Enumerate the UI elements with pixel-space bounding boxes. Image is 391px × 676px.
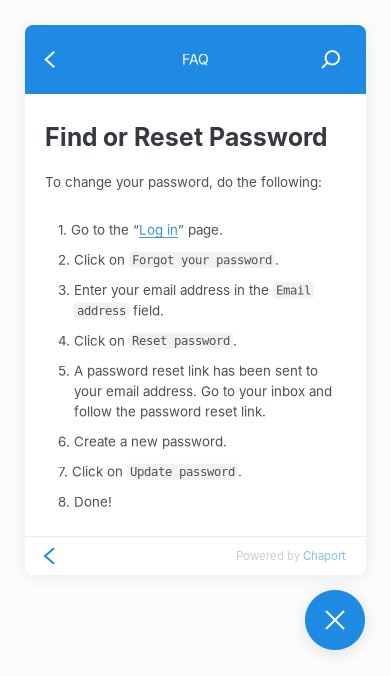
- staticText: Done!: [74, 494, 112, 510]
- staticText: 2.: [58, 252, 70, 268]
- staticText: 8.: [58, 494, 70, 510]
- staticText: Log in: [139, 222, 178, 238]
- staticText: 4.: [58, 333, 70, 349]
- button[interactable]: Close chat: [305, 590, 365, 650]
- staticText: 3.: [58, 282, 70, 298]
- staticText: field.: [129, 303, 164, 319]
- button[interactable]: Back: [29, 37, 71, 81]
- staticText: Email: [276, 283, 311, 297]
- staticText: address: [77, 303, 126, 318]
- button[interactable]: Search: [320, 37, 362, 81]
- staticText: Click on: [74, 252, 129, 268]
- staticText: Go to the “: [71, 222, 139, 238]
- staticText: 6.: [58, 434, 70, 450]
- staticText: ” page.: [178, 222, 223, 238]
- staticText: .: [238, 464, 242, 480]
- staticText: Enter your email address in the: [74, 282, 273, 298]
- staticText: Chaport: [303, 549, 346, 563]
- staticText: Powered by: [236, 549, 303, 563]
- staticText: 5.: [58, 363, 70, 379]
- button[interactable]: Back: [45, 537, 81, 575]
- staticText: .: [233, 333, 237, 349]
- staticText: To change your password, do the followin…: [45, 174, 322, 190]
- staticText: Find or Reset Password: [45, 122, 327, 152]
- staticText: Create a new password.: [74, 434, 227, 450]
- staticText: Click on: [72, 464, 127, 480]
- staticText: 7.: [58, 464, 68, 480]
- staticText: Click on: [74, 333, 129, 349]
- staticText: 1.: [58, 222, 67, 238]
- staticText: A password reset link has been sent to y…: [74, 363, 332, 420]
- staticText: .: [275, 252, 279, 268]
- staticText: Reset password: [132, 334, 230, 348]
- staticText: Forgot your password: [132, 253, 272, 267]
- staticText: Update password: [130, 465, 235, 479]
- staticText: FAQ: [182, 51, 209, 68]
